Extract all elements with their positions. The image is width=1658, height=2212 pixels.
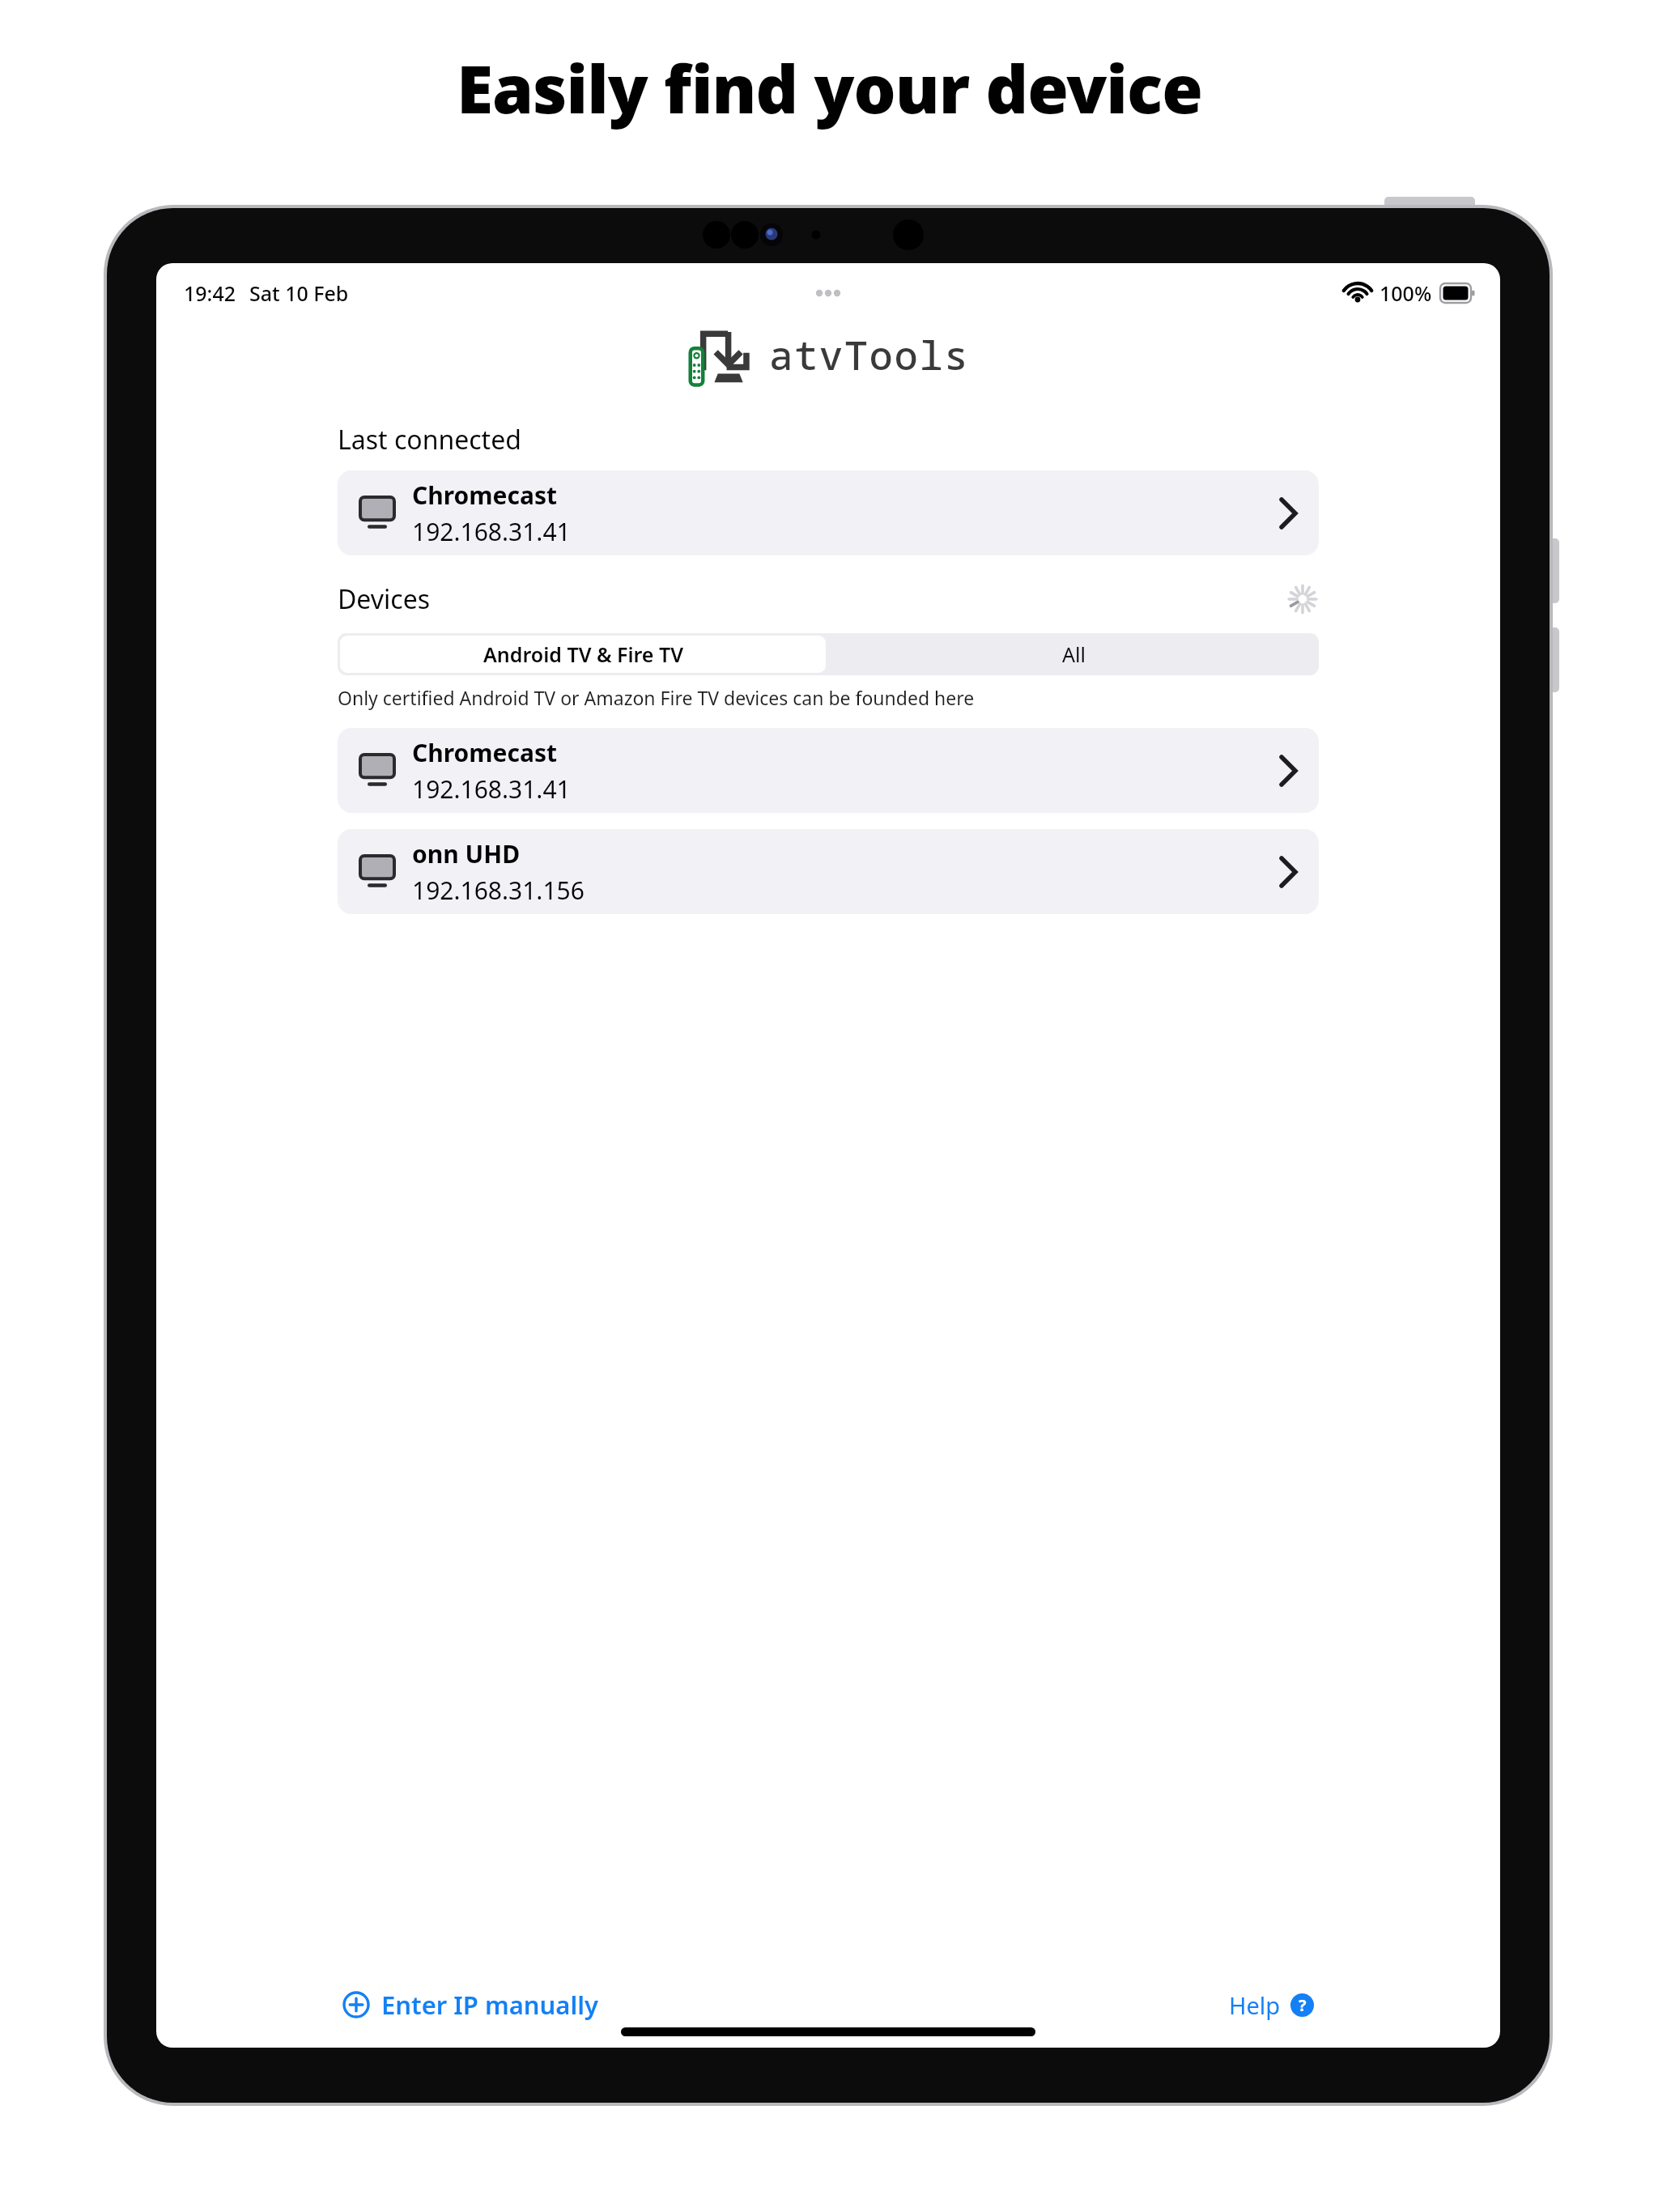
staticText: 192.168.31.156 bbox=[412, 874, 585, 907]
staticText: atvTools bbox=[769, 328, 970, 382]
button[interactable]: Chromecast bbox=[338, 470, 1319, 555]
staticText: ? bbox=[1299, 1994, 1307, 2016]
staticText: All bbox=[1062, 640, 1086, 668]
staticText: Chromecast bbox=[412, 479, 558, 512]
staticText: Easily find your device bbox=[457, 42, 1202, 133]
staticText: onn UHD bbox=[412, 837, 521, 870]
button[interactable]: Help bbox=[1224, 1984, 1319, 2026]
button[interactable]: Enter IP manually bbox=[338, 1983, 604, 2027]
staticText: Chromecast bbox=[412, 736, 558, 769]
staticText: 192.168.31.41 bbox=[412, 772, 571, 806]
button[interactable]: Chromecast bbox=[338, 728, 1319, 813]
button[interactable]: Android TV & Fire TV bbox=[340, 636, 826, 673]
other: Scanning bbox=[1286, 583, 1319, 615]
staticText: Enter IP manually bbox=[381, 1988, 599, 2022]
button[interactable]: onn UHD bbox=[338, 829, 1319, 914]
staticText: 19:42 bbox=[184, 279, 236, 307]
staticText: 100% bbox=[1380, 279, 1432, 307]
staticText: Android TV & Fire TV bbox=[483, 640, 683, 668]
staticText: Help bbox=[1229, 1989, 1281, 2021]
button[interactable]: All bbox=[828, 633, 1319, 675]
staticText: Devices bbox=[338, 581, 431, 617]
staticText: Last connected bbox=[338, 422, 521, 457]
staticText: Sat 10 Feb bbox=[249, 279, 349, 307]
staticText: 192.168.31.41 bbox=[412, 515, 571, 548]
staticText: Only certified Android TV or Amazon Fire… bbox=[338, 685, 975, 710]
